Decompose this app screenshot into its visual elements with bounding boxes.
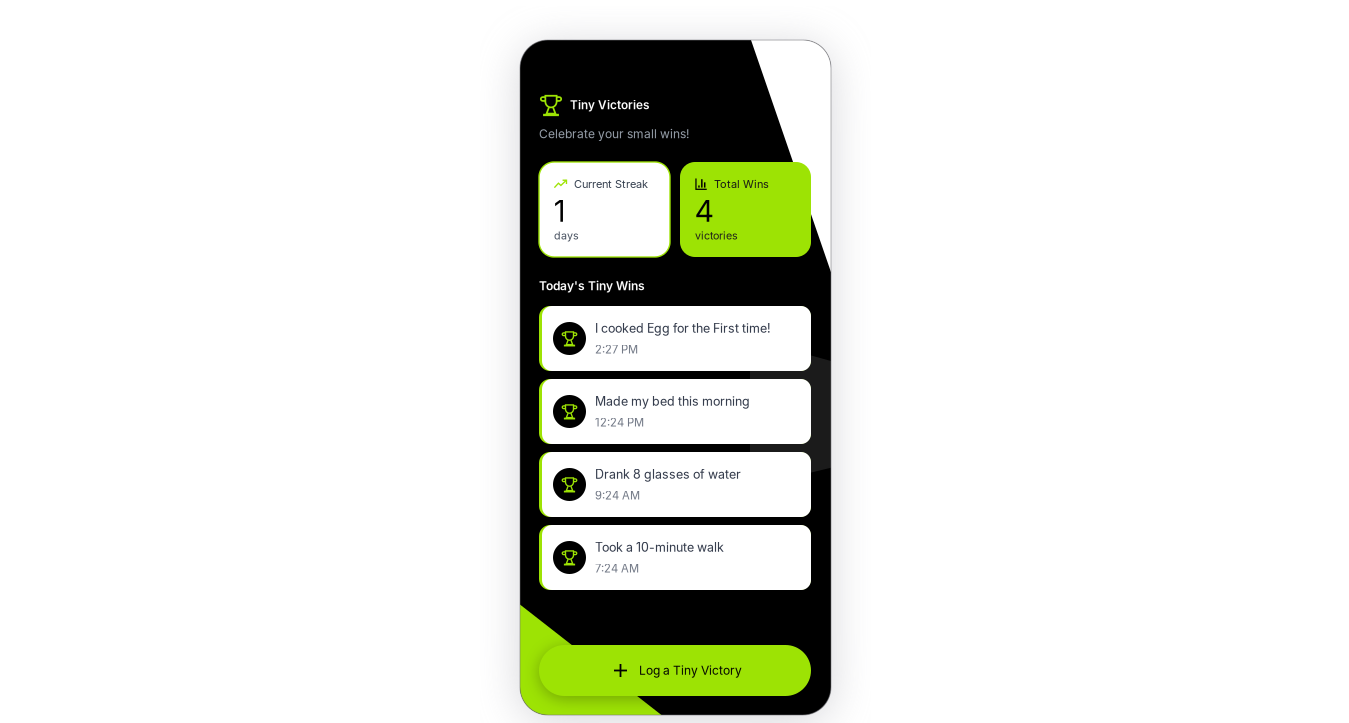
- staticText: 2:27 PM: [595, 343, 638, 356]
- staticText: Drank 8 glasses of water: [595, 467, 741, 482]
- staticText: Total Wins: [714, 177, 769, 191]
- button[interactable]: Drank 8 glasses of water: [539, 452, 811, 517]
- staticText: 1: [554, 193, 565, 229]
- button[interactable]: I cooked Egg for the First time!: [539, 306, 811, 371]
- staticText: 4: [695, 193, 714, 229]
- staticText: Made my bed this morning: [595, 394, 750, 409]
- staticText: 12:24 PM: [595, 416, 644, 429]
- staticText: Current Streak: [574, 177, 648, 191]
- staticText: 9:24 AM: [595, 489, 640, 502]
- staticText: I cooked Egg for the First time!: [595, 321, 771, 336]
- staticText: Today's Tiny Wins: [539, 279, 645, 293]
- staticText: Took a 10-minute walk: [595, 540, 724, 555]
- staticText: 7:24 AM: [595, 562, 639, 575]
- staticText: Log a Tiny Victory: [639, 663, 742, 678]
- button[interactable]: Took a 10-minute walk: [539, 525, 811, 590]
- staticText: Celebrate your small wins!: [539, 127, 689, 141]
- staticText: days: [554, 229, 579, 242]
- button[interactable]: Log a Tiny Victory: [539, 645, 811, 696]
- staticText: Tiny Victories: [570, 98, 649, 112]
- button[interactable]: Made my bed this morning: [539, 379, 811, 444]
- staticText: victories: [695, 229, 738, 242]
